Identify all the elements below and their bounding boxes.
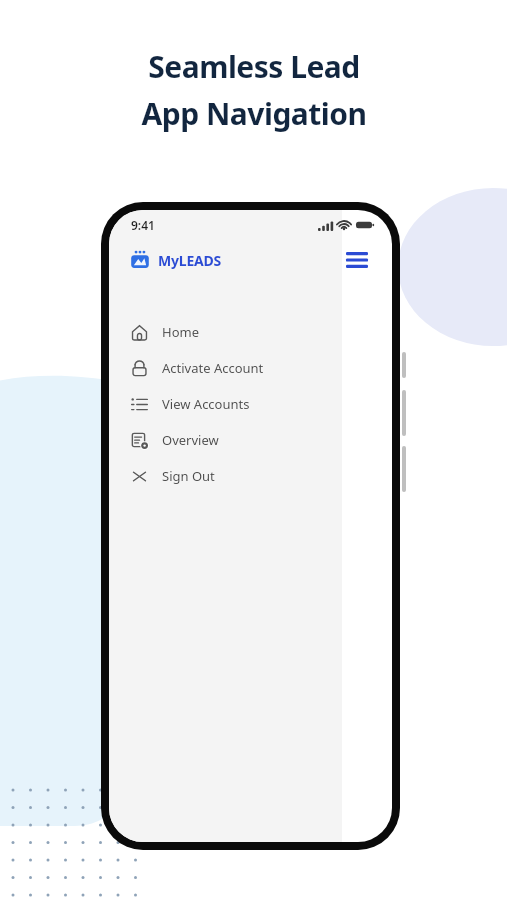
staticText: MyLEADS: [158, 251, 222, 270]
staticText: Sign Out: [162, 467, 215, 485]
staticText: App Navigation: [141, 93, 367, 134]
button[interactable]: Activate Account: [109, 350, 342, 386]
button[interactable]: Home: [109, 314, 342, 350]
staticText: Seamless Lead: [148, 46, 360, 87]
button[interactable]: Sign Out: [109, 458, 342, 494]
button[interactable]: Open navigation menu: [340, 243, 374, 277]
staticText: Activate Account: [162, 359, 264, 377]
staticText: 9:41: [131, 217, 155, 233]
staticText: Overview: [162, 431, 219, 449]
button[interactable]: MyLEADS: [129, 249, 222, 271]
staticText: Home: [162, 323, 199, 341]
button[interactable]: View Accounts: [109, 386, 342, 422]
button[interactable]: Overview: [109, 422, 342, 458]
staticText: View Accounts: [162, 395, 250, 413]
